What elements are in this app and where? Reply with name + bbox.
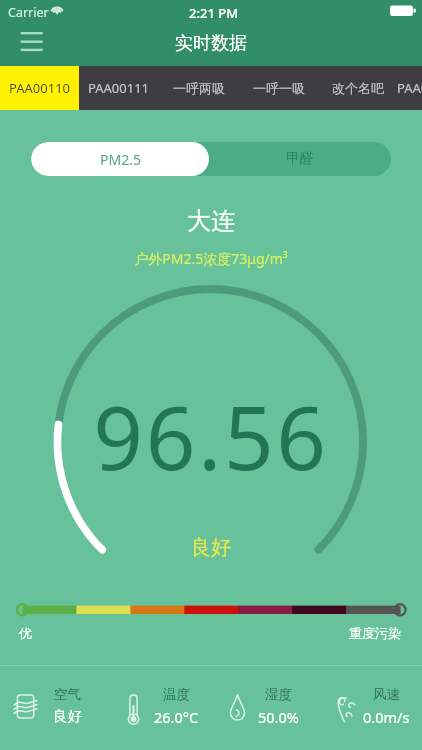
staticText: 改个名吧 — [332, 80, 384, 96]
button[interactable]: 一呼一吸 — [239, 66, 319, 110]
staticText: 优 — [19, 625, 32, 641]
staticText: 一呼一吸 — [253, 80, 305, 96]
button[interactable]: 风速 — [317, 666, 422, 750]
staticText: PAA00110 — [9, 79, 71, 97]
staticText: 户外PM2.5浓度73μg/m³ — [0, 249, 422, 268]
button[interactable]: 一呼两吸 — [158, 66, 239, 110]
staticText: 甲醛 — [286, 150, 314, 168]
button[interactable]: Menu — [10, 26, 54, 56]
staticText: 良好 — [0, 535, 422, 560]
staticText: 温度 — [163, 686, 190, 703]
staticText: 风速 — [373, 686, 400, 703]
button[interactable]: PAA00112 — [397, 66, 422, 110]
button[interactable]: 甲醛 — [209, 142, 391, 176]
staticText: 2:21 PM — [189, 4, 239, 22]
staticText: 大连 — [0, 206, 422, 236]
button[interactable]: 改个名吧 — [319, 66, 397, 110]
staticText: 实时数据 — [0, 32, 422, 55]
staticText: PM2.5 — [100, 150, 141, 169]
button[interactable]: 湿度 — [211, 666, 317, 750]
staticText: 重度污染 — [0, 625, 401, 641]
staticText: 0.0m/s — [363, 707, 410, 727]
staticText: 一呼两吸 — [173, 80, 225, 96]
button[interactable]: PM2.5 — [31, 142, 209, 176]
staticText: Carrier — [8, 4, 49, 21]
staticText: 空气 — [54, 686, 81, 703]
button[interactable]: PAA00111 — [79, 66, 158, 110]
button[interactable]: PAA00110 — [0, 66, 79, 110]
button[interactable]: 温度 — [106, 666, 212, 750]
staticText: 50.0% — [258, 707, 299, 727]
staticText: 26.0°C — [154, 707, 199, 727]
staticText: 湿度 — [265, 686, 292, 703]
button[interactable]: 空气 — [0, 666, 106, 750]
staticText: 良好 — [53, 707, 82, 725]
staticText: PAA00112 — [397, 79, 422, 97]
staticText: 96.56 — [0, 377, 422, 495]
staticText: PAA00111 — [88, 79, 150, 97]
